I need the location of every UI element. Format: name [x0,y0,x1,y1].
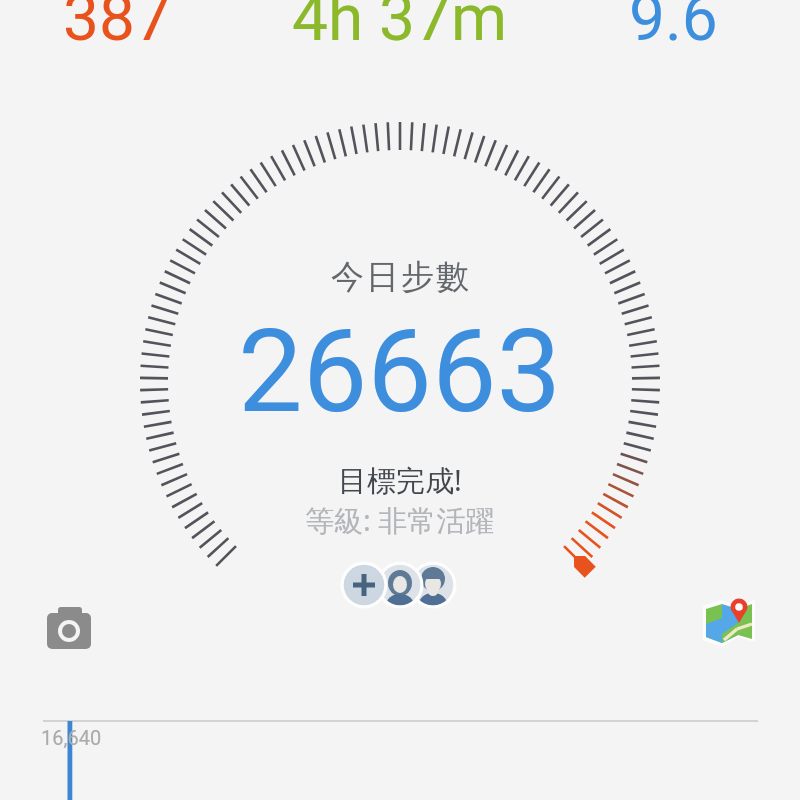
button[interactable] [344,562,456,608]
staticText: 今日步數 [330,256,470,298]
button[interactable]: 4h 37m [250,0,550,58]
staticText: 16,640 [41,726,102,749]
button[interactable] [700,596,758,652]
staticText: 等級: 非常活躍 [305,500,495,540]
staticText: 4h 37m [292,0,508,56]
staticText: 目標完成! [338,460,462,500]
button[interactable] [40,602,100,656]
staticText: 26663 [238,304,562,439]
button[interactable]: 387 [0,0,267,58]
staticText: 9.6 [629,0,718,56]
button[interactable]: 9.6 [523,0,800,58]
staticText: 387 [63,0,171,56]
